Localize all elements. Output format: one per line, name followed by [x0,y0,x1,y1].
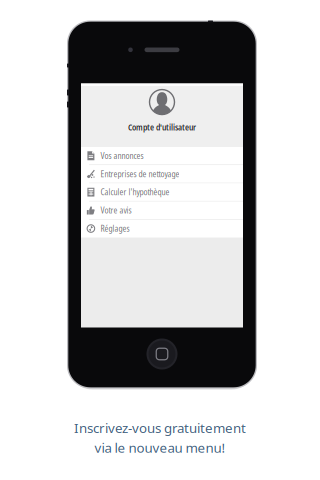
button[interactable]: Calculer l'hypothèque [81,183,243,201]
staticText: Vos annonces [100,150,143,161]
button[interactable]: Entreprises de nettoyage [81,165,243,183]
button[interactable]: Vos annonces [81,147,243,164]
staticText: Compte d'utilisateur [128,122,196,133]
staticText: via le nouveau menu! [94,439,225,456]
staticText: Entreprises de nettoyage [100,168,179,180]
staticText: Votre avis [100,205,131,216]
button[interactable]: Réglages [81,220,243,237]
button[interactable]: Votre avis [81,202,243,219]
staticText: Calculer l'hypothèque [100,186,169,198]
staticText: Inscrivez-vous gratuitement [74,419,246,437]
staticText: Réglages [100,223,129,234]
